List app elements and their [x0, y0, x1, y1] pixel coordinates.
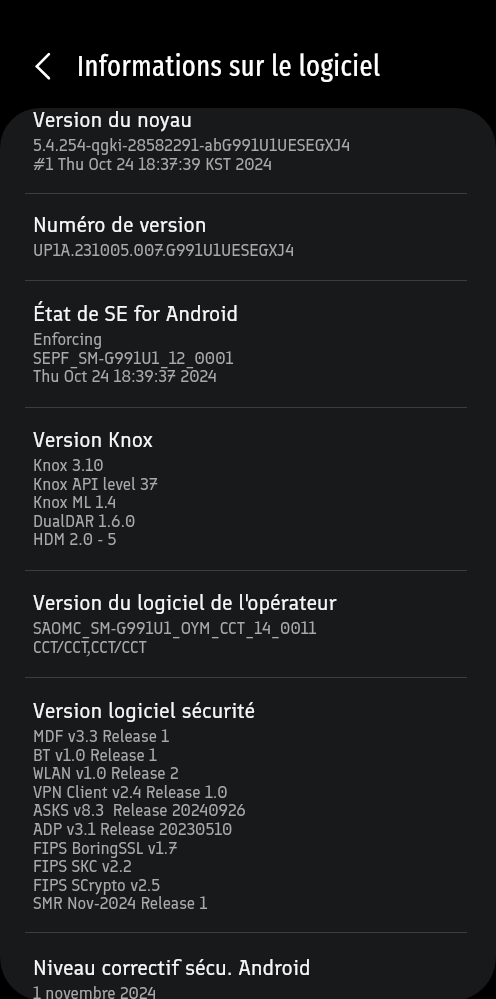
- staticText: BT v1.0 Release 1: [33, 745, 157, 765]
- staticText: FIPS SKC v2.2: [33, 856, 132, 876]
- staticText: UP1A.231005.007.G991U1UESEGXJ4: [33, 240, 295, 260]
- button[interactable]: Version logiciel sécurité: [0, 684, 496, 932]
- staticText: Informations sur le logiciel: [77, 49, 381, 84]
- staticText: Version Knox: [33, 426, 153, 452]
- staticText: Enforcing: [33, 329, 103, 349]
- staticText: CCT/CCT,CCT/CCT: [33, 637, 147, 657]
- staticText: MDF v3.3 Release 1: [33, 726, 170, 746]
- staticText: Version logiciel sécurité: [33, 697, 256, 723]
- staticText: SAOMC_SM-G991U1_OYM_CCT_14_0011: [33, 618, 317, 638]
- staticText: #1 Thu Oct 24 18:37:39 KST 2024: [33, 154, 272, 174]
- staticText: Version du noyau: [33, 106, 193, 132]
- staticText: ASKS v8.3 Release 20240926: [33, 800, 246, 820]
- staticText: DualDAR 1.6.0: [33, 511, 136, 531]
- staticText: SMR Nov-2024 Release 1: [33, 893, 208, 913]
- staticText: HDM 2.0 - 5: [33, 529, 117, 549]
- staticText: Thu Oct 24 18:39:37 2024: [33, 366, 217, 386]
- staticText: FIPS BoringSSL v1.7: [33, 838, 178, 858]
- button[interactable]: État de SE for Android: [0, 287, 496, 407]
- button[interactable]: Version du noyau: [0, 93, 496, 193]
- staticText: Version du logiciel de l'opérateur: [33, 589, 337, 615]
- staticText: 5.4.254-qgki-28582291-abG991U1UESEGXJ4: [33, 135, 351, 155]
- staticText: FIPS SCrypto v2.5: [33, 875, 161, 895]
- button[interactable]: Version Knox: [0, 413, 496, 571]
- staticText: Knox ML 1.4: [33, 492, 117, 512]
- button[interactable]: Navigate back: [18, 43, 66, 91]
- staticText: VPN Client v2.4 Release 1.0: [33, 782, 228, 802]
- staticText: SEPF_SM-G991U1_12_0001: [33, 348, 234, 368]
- staticText: État de SE for Android: [33, 300, 239, 326]
- staticText: WLAN v1.0 Release 2: [33, 763, 179, 783]
- staticText: Niveau correctif sécu. Android: [33, 954, 311, 980]
- button[interactable]: Niveau correctif sécu. Android: [0, 941, 496, 999]
- button[interactable]: Version du logiciel de l'opérateur: [0, 576, 496, 677]
- staticText: 1 novembre 2024: [33, 983, 157, 999]
- staticText: Knox 3.10: [33, 455, 104, 475]
- button[interactable]: Numéro de version: [0, 198, 496, 280]
- staticText: Numéro de version: [33, 211, 207, 237]
- staticText: Knox API level 37: [33, 474, 159, 494]
- staticText: ADP v3.1 Release 20230510: [33, 819, 233, 839]
